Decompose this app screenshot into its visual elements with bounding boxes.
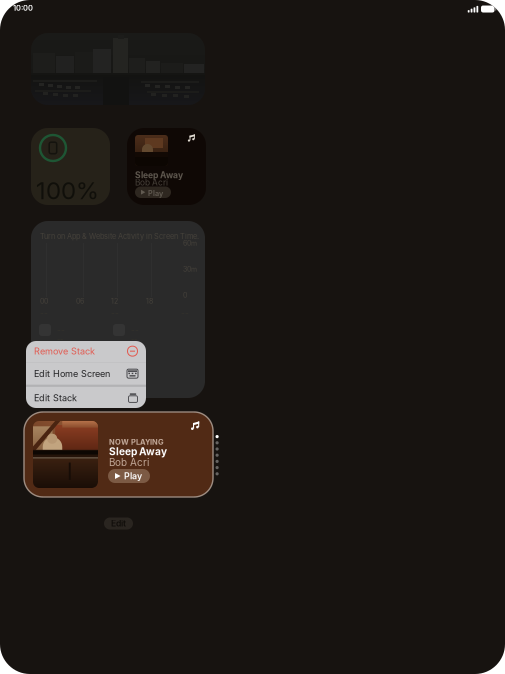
button[interactable]: Remove Stack xyxy=(26,340,146,362)
staticText: Play xyxy=(148,189,163,198)
staticText: 12 xyxy=(111,297,118,305)
staticText: 06 xyxy=(76,297,84,305)
staticText: 18 xyxy=(146,297,153,305)
staticText: Play xyxy=(124,471,142,481)
button[interactable]: Edit xyxy=(104,517,133,529)
staticText: Edit Stack xyxy=(34,392,77,403)
staticText: Edit Home Screen xyxy=(34,368,110,379)
staticText: Edit xyxy=(111,518,126,529)
staticText: 0 xyxy=(183,291,187,299)
staticText: 00 xyxy=(40,297,48,305)
button[interactable]: Edit Stack xyxy=(26,387,146,409)
button[interactable]: Play xyxy=(108,469,150,483)
button[interactable]: Edit Home Screen xyxy=(26,363,146,385)
staticText: Turn on App & Website Activity in Screen… xyxy=(40,232,199,241)
staticText: Sleep Away xyxy=(109,445,167,458)
staticText: Remove Stack xyxy=(34,346,95,357)
staticText: NOW PLAYING xyxy=(109,437,164,446)
staticText: Bob Acri xyxy=(109,456,149,468)
staticText: 10:00 xyxy=(13,3,33,12)
staticText: Sleep Away xyxy=(135,170,183,180)
staticText: -- xyxy=(131,335,137,343)
staticText: Bob Acri xyxy=(135,177,168,187)
staticText: 60m xyxy=(183,239,197,247)
staticText: 30m xyxy=(183,265,197,273)
staticText: -- xyxy=(57,335,63,343)
button[interactable]: Music xyxy=(190,421,200,431)
staticText: 100% xyxy=(36,176,99,205)
